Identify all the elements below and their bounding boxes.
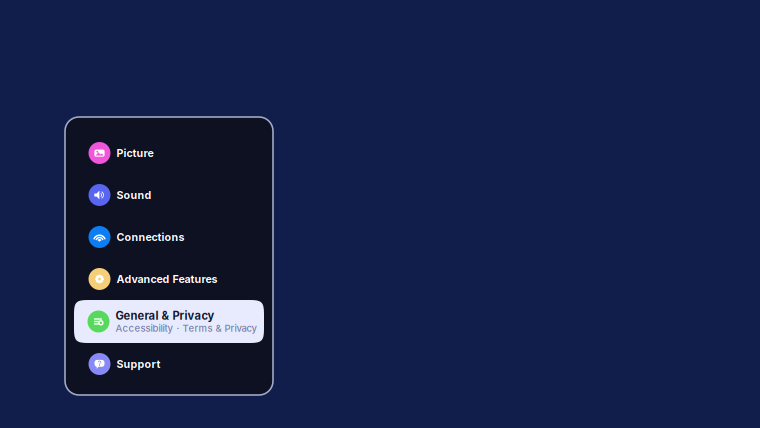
staticText: Accessibility · Terms & Privacy — [115, 322, 257, 334]
staticText: Picture — [116, 146, 153, 159]
staticText: Advanced Features — [116, 272, 217, 285]
staticText: Support — [116, 357, 160, 370]
staticText: General & Privacy — [115, 309, 214, 322]
button[interactable]: General & Privacy — [65, 300, 273, 343]
button[interactable]: Advanced Features — [65, 258, 273, 300]
button[interactable]: Sound — [65, 174, 273, 216]
button[interactable]: Connections — [65, 216, 273, 258]
staticText: Sound — [116, 188, 151, 201]
button[interactable]: Picture — [65, 132, 273, 174]
staticText: Connections — [116, 230, 184, 243]
button[interactable]: Support — [65, 343, 273, 385]
